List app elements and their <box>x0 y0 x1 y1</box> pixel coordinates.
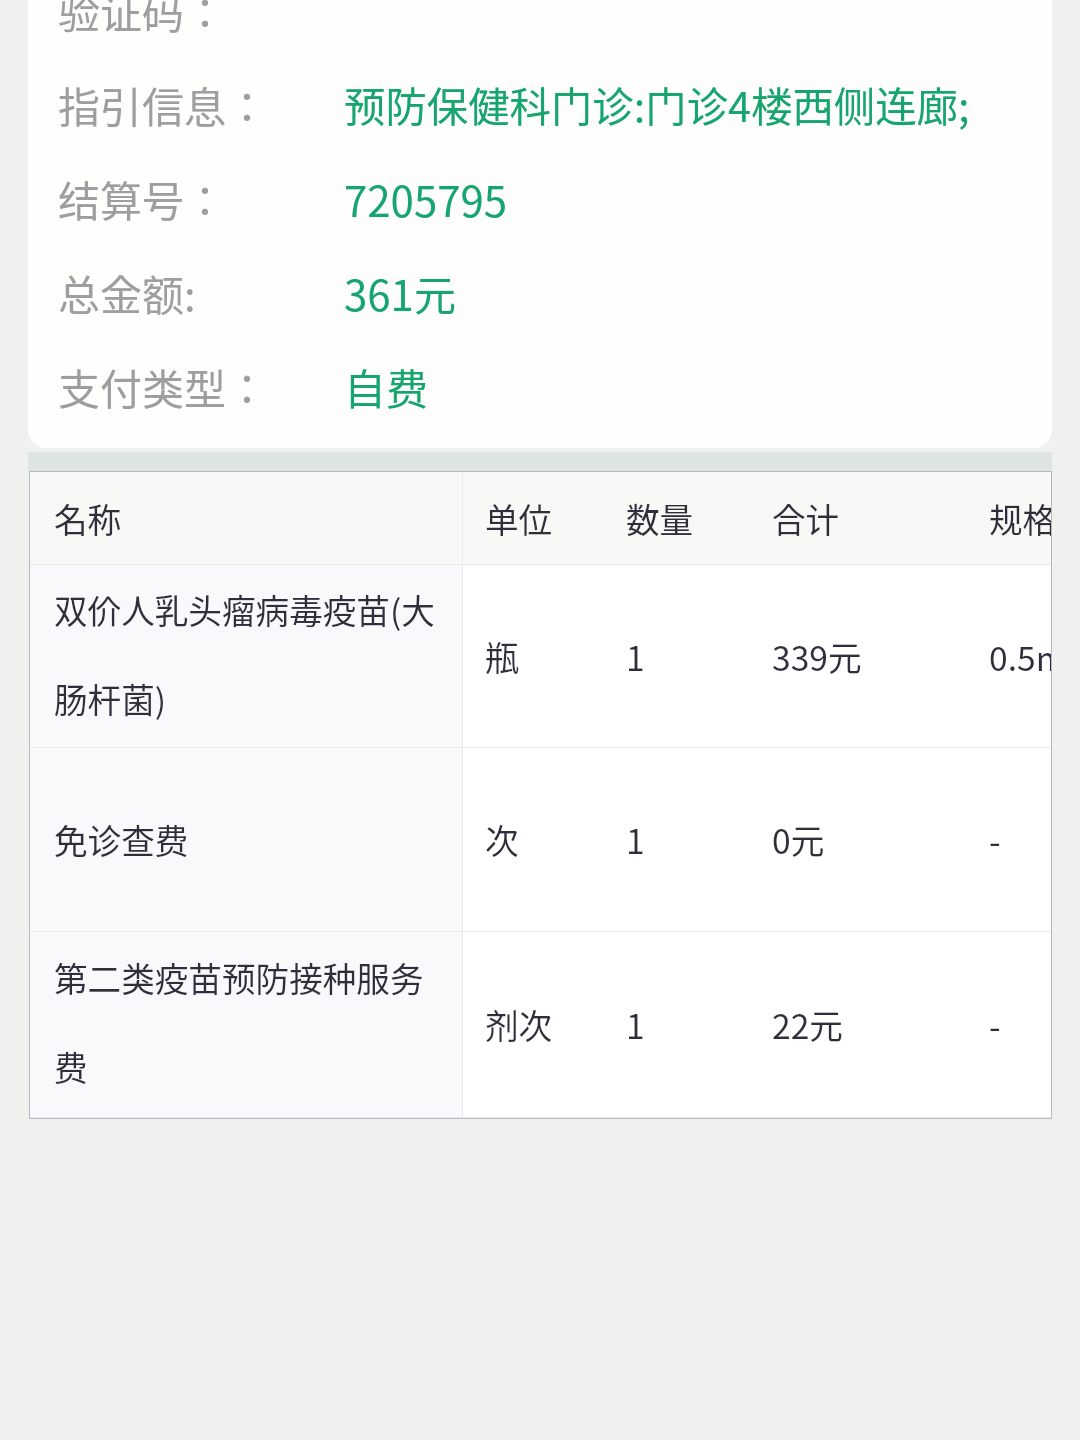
staticText: 合计 <box>772 494 840 543</box>
staticText: 次 <box>485 815 519 864</box>
staticText: 0.5ml <box>989 632 1051 681</box>
staticText: 361元 <box>344 262 456 323</box>
staticText: 总金额: <box>58 262 196 323</box>
staticText: 7205795 <box>344 168 508 229</box>
staticText: 瓶 <box>485 632 519 681</box>
staticText: 339元 <box>772 632 862 681</box>
staticText: - <box>989 1000 1001 1049</box>
staticText: - <box>989 815 1001 864</box>
button[interactable]: 结算号： <box>28 151 1052 245</box>
staticText: 第二类疫苗预防接种服务 费 <box>54 953 424 1091</box>
button[interactable]: 支付类型： <box>28 339 1052 433</box>
button[interactable]: 指引信息： <box>28 57 1052 151</box>
staticText: 指引信息： <box>58 74 269 135</box>
staticText: 预防保健科门诊:门诊4楼西侧连廊; <box>344 74 970 134</box>
staticText: 规格 <box>989 494 1051 543</box>
staticText: 0元 <box>772 815 825 864</box>
staticText: 结算号： <box>58 168 227 229</box>
staticText: 数量 <box>626 494 694 543</box>
button[interactable]: 总金额: <box>28 245 1052 339</box>
staticText: 单位 <box>485 494 553 543</box>
button[interactable]: 剂次 <box>463 932 1051 1117</box>
staticText: 支付类型： <box>58 356 269 417</box>
staticText: 验证码： <box>58 0 227 41</box>
staticText: 双价人乳头瘤病毒疫苗(大 肠杆菌) <box>54 585 435 723</box>
staticText: 免诊查费 <box>54 815 189 864</box>
button[interactable]: 第二类疫苗预防接种服务 费 <box>30 932 462 1117</box>
staticText: 1 <box>626 632 645 681</box>
staticText: 1 <box>626 1000 645 1049</box>
button[interactable]: 验证码： <box>28 0 1052 57</box>
staticText: 剂次 <box>485 1000 553 1049</box>
button[interactable]: 免诊查费 <box>30 748 462 931</box>
button[interactable]: 次 <box>463 748 1051 931</box>
staticText: 名称 <box>54 494 122 543</box>
button[interactable]: 双价人乳头瘤病毒疫苗(大 肠杆菌) <box>30 565 462 747</box>
button[interactable]: 名称 <box>30 472 462 564</box>
staticText: 22元 <box>772 1000 843 1049</box>
button[interactable]: 瓶 <box>463 565 1051 747</box>
button[interactable]: 单位 <box>463 472 1051 564</box>
staticText: 自费 <box>344 356 429 417</box>
staticText: 1 <box>626 815 645 864</box>
